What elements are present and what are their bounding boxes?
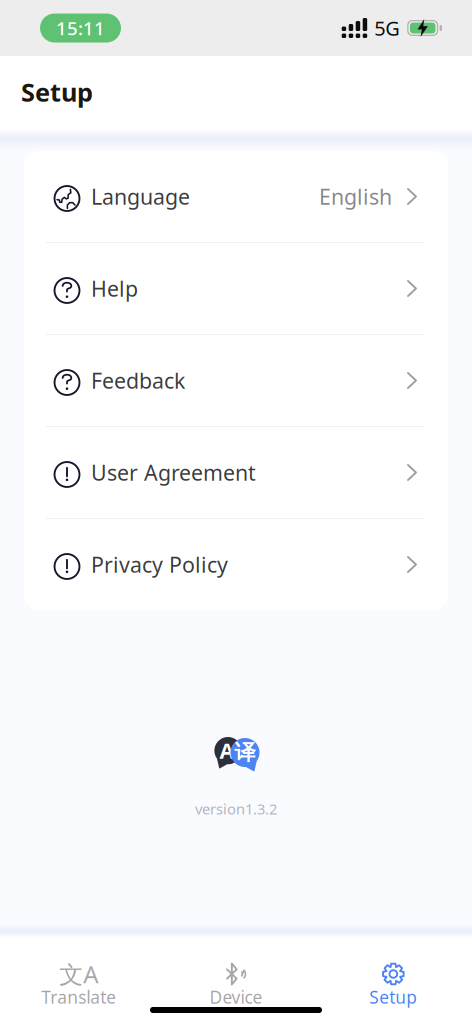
staticText: User Agreement (91, 458, 256, 487)
button[interactable]: Language (24, 151, 448, 242)
staticText: Translate (41, 985, 116, 1008)
staticText: Setup (21, 75, 93, 109)
staticText: Setup (369, 985, 417, 1008)
staticText: A (219, 736, 234, 765)
staticText: Feedback (91, 366, 185, 395)
button[interactable]: Privacy Policy (24, 519, 448, 610)
staticText: Privacy Policy (91, 550, 228, 579)
button[interactable]: Device (157, 938, 315, 1007)
staticText: Device (209, 985, 262, 1008)
staticText: Language (91, 182, 190, 211)
staticText: 文A (59, 958, 98, 990)
button[interactable]: Setup (315, 938, 472, 1007)
staticText: 15:11 (56, 16, 105, 40)
button[interactable]: 文A (0, 938, 157, 1007)
button[interactable]: Help (24, 243, 448, 334)
staticText: version1.3.2 (195, 799, 277, 818)
staticText: 5G (374, 15, 400, 41)
staticText: Help (91, 274, 138, 303)
staticText: English (319, 182, 392, 211)
staticText: 译 (234, 739, 255, 766)
button[interactable]: User Agreement (24, 427, 448, 518)
button[interactable]: Feedback (24, 335, 448, 426)
